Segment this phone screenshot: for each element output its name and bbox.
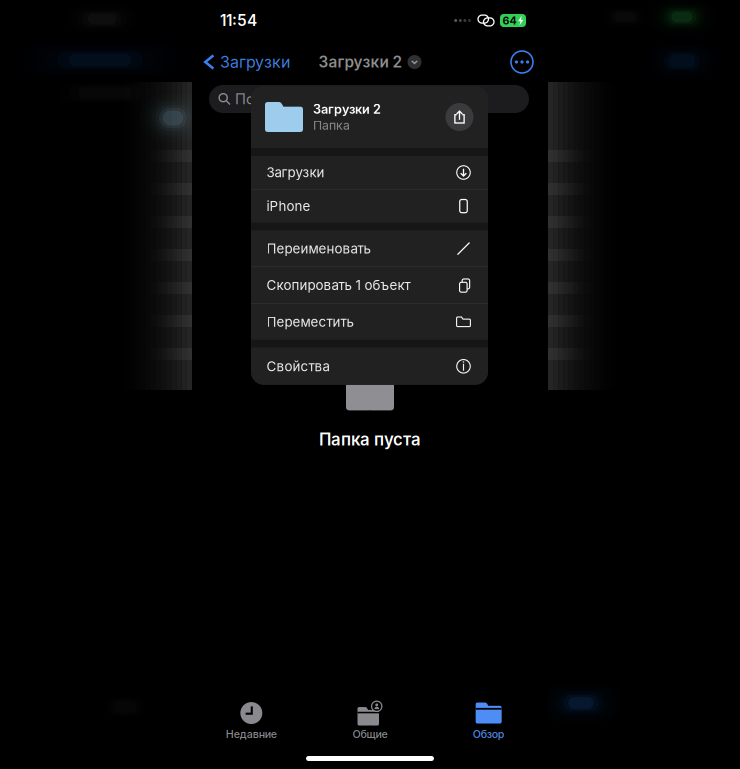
button[interactable]: Загрузки — [200, 41, 292, 83]
button[interactable]: Загрузки — [251, 156, 488, 189]
staticText: Загрузки — [266, 164, 324, 180]
staticText: Переместить — [266, 314, 353, 330]
staticText: Скопировать 1 объект — [266, 277, 410, 293]
staticText: Загрузки 2 — [313, 101, 381, 117]
staticText: Поиск — [235, 90, 280, 108]
button[interactable]: Свойства — [251, 348, 488, 385]
staticText: iPhone — [266, 198, 310, 214]
staticText: Недавние — [226, 727, 277, 740]
button[interactable]: Поделиться — [445, 103, 473, 131]
staticText: i — [462, 359, 465, 374]
button[interactable]: Переименовать — [251, 231, 488, 267]
staticText: Общие — [352, 727, 387, 740]
button[interactable]: Скопировать 1 объект — [251, 267, 488, 303]
button[interactable]: Обзор — [429, 700, 548, 741]
staticText: 64 — [502, 14, 516, 27]
button[interactable]: Загрузки 2 — [192, 41, 548, 83]
button[interactable]: Недавние — [192, 700, 311, 741]
button[interactable]: iPhone — [251, 190, 488, 223]
button[interactable]: Ещё — [507, 41, 537, 83]
staticText: Папка пуста — [319, 429, 421, 450]
staticText: 11:54 — [220, 11, 257, 30]
button[interactable]: Общие — [311, 700, 429, 741]
staticText: Папка — [313, 118, 350, 132]
button[interactable]: Переместить — [251, 304, 488, 340]
staticText: Загрузки — [220, 52, 290, 72]
staticText: Свойства — [266, 358, 329, 374]
staticText: Загрузки 2 — [318, 53, 402, 71]
button[interactable]: Поиск — [209, 85, 529, 113]
staticText: Переименовать — [266, 240, 370, 257]
staticText: Обзор — [473, 727, 505, 740]
